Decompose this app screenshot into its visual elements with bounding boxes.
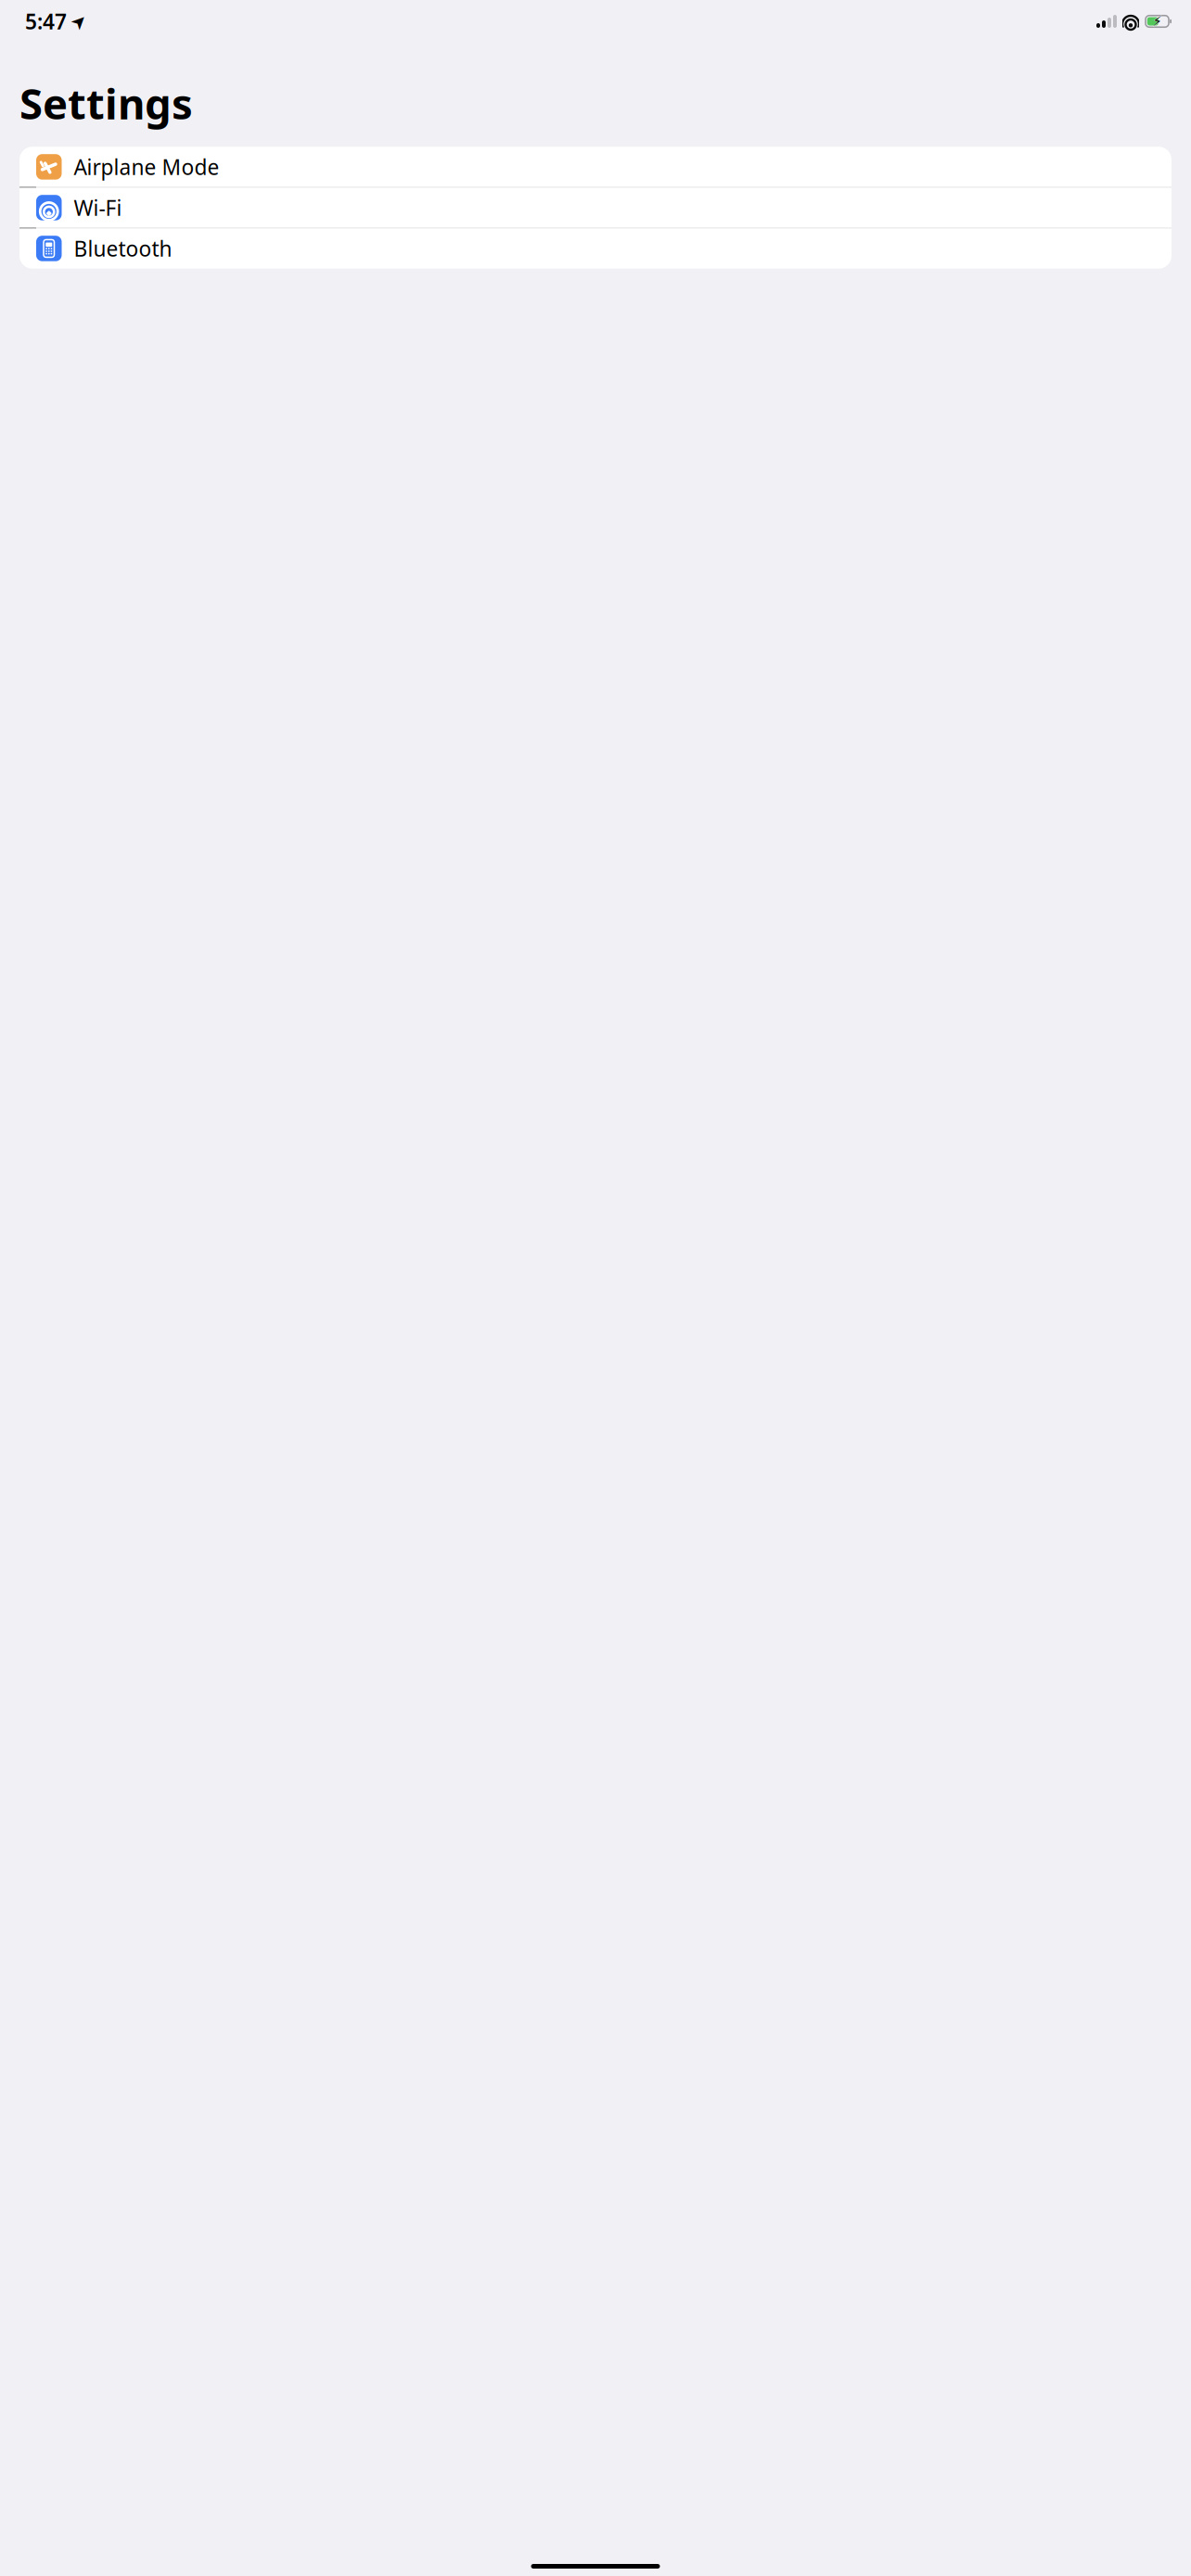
button[interactable]: Airplane Mode	[19, 147, 1172, 187]
staticText: ⚡︎	[1153, 14, 1162, 29]
staticText: ➤	[71, 11, 87, 32]
staticText: Airplane Mode	[74, 153, 219, 181]
button[interactable]: Bluetooth	[19, 228, 1172, 269]
staticText: ⚡︎	[1152, 12, 1163, 31]
staticText: Settings	[19, 75, 193, 131]
staticText: Wi-Fi	[74, 194, 122, 222]
button[interactable]: Wi-Fi	[19, 187, 1172, 228]
staticText: 5:47	[25, 7, 67, 35]
staticText: Bluetooth	[74, 235, 172, 262]
